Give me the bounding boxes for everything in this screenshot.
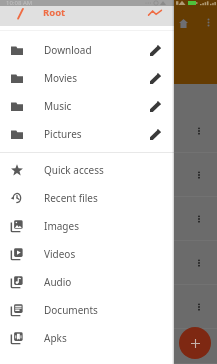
button[interactable]: Item options [193, 125, 205, 137]
button[interactable]: Edit Pictures [143, 120, 167, 148]
staticText: Download [44, 43, 92, 57]
button[interactable]: Edit Music [143, 92, 167, 120]
staticText: Recent files [44, 191, 98, 205]
button[interactable]: Music [0, 92, 174, 120]
staticText: Root [43, 6, 66, 19]
button[interactable]: Item options [193, 341, 205, 353]
button[interactable]: Download [0, 36, 174, 64]
staticText: Quick access [44, 163, 104, 177]
button[interactable]: Item options [0, 197, 217, 241]
button[interactable]: Item options [0, 241, 217, 285]
staticText: Apks [44, 331, 67, 345]
button[interactable]: Videos [0, 240, 174, 268]
button[interactable]: Recent files [0, 184, 174, 212]
staticText: Pictures [44, 127, 82, 141]
staticText: 10:08 AM [6, 0, 33, 5]
button[interactable]: Item options [0, 153, 217, 197]
button[interactable]: Images [0, 212, 174, 240]
button[interactable]: Item options [0, 109, 217, 153]
button[interactable]: Item options [193, 169, 205, 181]
button[interactable]: Item options [193, 257, 205, 269]
button[interactable]: Pictures [0, 120, 174, 148]
staticText: Videos [44, 247, 76, 261]
button[interactable]: Add [179, 327, 211, 359]
button[interactable]: Movies [0, 64, 174, 92]
button[interactable]: Item options [0, 329, 217, 364]
button[interactable]: Apks [0, 324, 174, 352]
button[interactable]: Item options [193, 301, 205, 313]
button[interactable]: Documents [0, 296, 174, 324]
staticText: Images [44, 219, 79, 233]
button[interactable]: Item options [193, 213, 205, 225]
button[interactable]: Edit Download [143, 36, 167, 64]
button[interactable]: Edit Movies [143, 64, 167, 92]
button[interactable]: Home [175, 15, 191, 31]
staticText: Audio [44, 275, 72, 289]
button[interactable]: Quick access [0, 156, 174, 184]
button[interactable]: More options [201, 15, 215, 29]
button[interactable]: Audio [0, 268, 174, 296]
button[interactable]: Item options [0, 285, 217, 329]
staticText: Movies [44, 71, 78, 85]
staticText: Documents [44, 303, 98, 317]
staticText: Music [44, 99, 72, 113]
